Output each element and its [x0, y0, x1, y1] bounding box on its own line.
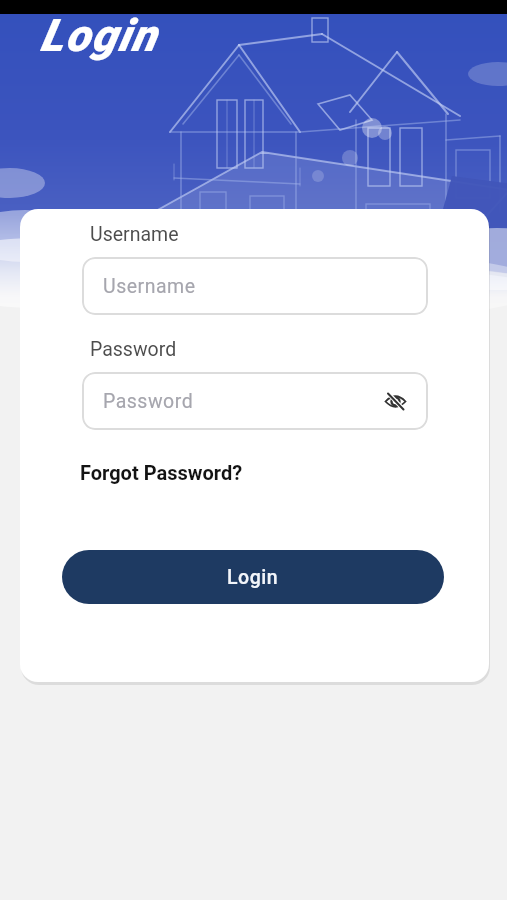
- button[interactable]: Username: [82, 257, 428, 315]
- staticText: Login: [40, 9, 158, 62]
- staticText: Password: [103, 390, 194, 413]
- staticText: Password: [90, 338, 177, 361]
- staticText: Login: [227, 566, 279, 589]
- button[interactable]: Password: [82, 372, 428, 430]
- button[interactable]: [382, 388, 408, 414]
- button[interactable]: Login: [62, 550, 444, 604]
- staticText: Username: [90, 223, 179, 246]
- button[interactable]: Forgot Password?: [80, 461, 243, 484]
- staticText: Username: [103, 275, 196, 298]
